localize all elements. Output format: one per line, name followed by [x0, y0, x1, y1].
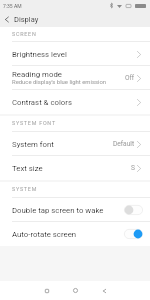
button[interactable]: Auto-rotate screen [0, 222, 150, 246]
staticText: System font [12, 140, 54, 149]
staticText: Text size [12, 164, 43, 173]
button[interactable]: Reading mode [0, 66, 150, 90]
staticText: Reading mode [12, 70, 62, 79]
button[interactable]: Double tap screen to wake [0, 198, 150, 222]
staticText: Off [125, 74, 135, 82]
button[interactable]: Home [64, 281, 86, 300]
button[interactable]: System font [0, 132, 150, 156]
staticText: Contrast & colors [12, 98, 72, 107]
button[interactable]: Contrast & colors [0, 90, 150, 114]
button[interactable]: Brightness level [0, 42, 150, 66]
staticText: Brightness level [12, 50, 67, 59]
button[interactable]: Back [0, 11, 14, 27]
other: Off [124, 205, 143, 215]
staticText: S [131, 164, 135, 172]
staticText: Double tap screen to wake [12, 206, 124, 215]
button[interactable]: Recent apps [36, 281, 58, 300]
other: On [124, 229, 143, 239]
staticText: Reduce display's blue light emission [12, 79, 107, 86]
button[interactable]: Back [93, 281, 115, 300]
staticText: Display [14, 15, 39, 24]
staticText: Default [113, 140, 135, 148]
staticText: SCREEN [12, 31, 37, 37]
button[interactable]: Text size [0, 156, 150, 180]
staticText: Auto-rotate screen [12, 230, 124, 239]
staticText: 7:35 AM [3, 3, 22, 9]
staticText: SYSTEM FONT [12, 120, 56, 126]
staticText: SYSTEM [12, 186, 38, 192]
